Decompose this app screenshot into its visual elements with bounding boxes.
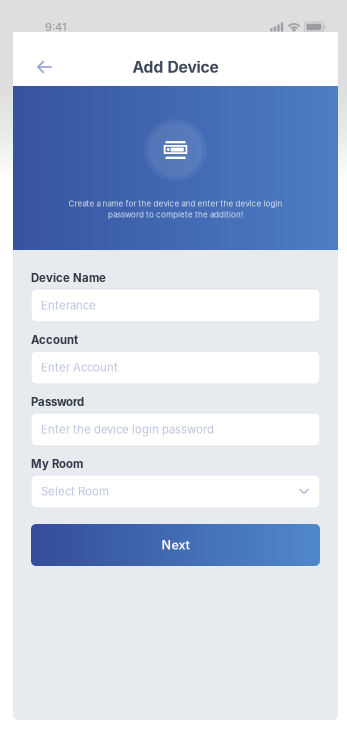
staticText: Password: [31, 395, 84, 409]
staticText: password to complete the addition!: [108, 210, 243, 219]
staticText: Device Name: [31, 271, 106, 285]
staticText: Account: [31, 333, 78, 347]
button[interactable]: Next: [31, 524, 320, 566]
staticText: Select Room: [41, 485, 109, 498]
button[interactable]: Enterance: [31, 289, 320, 322]
staticText: Create a name for the device and enter t…: [68, 199, 282, 208]
button[interactable]: Enter Account: [31, 351, 320, 384]
staticText: My Room: [31, 457, 83, 471]
button[interactable]: Back: [27, 50, 61, 84]
button[interactable]: Enter the device login password: [31, 413, 320, 446]
staticText: Next: [161, 537, 189, 553]
staticText: Add Device: [132, 58, 218, 76]
staticText: Enterance: [41, 299, 96, 312]
staticText: Enter the device login password: [41, 423, 214, 436]
button[interactable]: Select Room: [31, 475, 320, 508]
staticText: Enter Account: [41, 361, 118, 374]
staticText: 9:41: [45, 20, 67, 34]
